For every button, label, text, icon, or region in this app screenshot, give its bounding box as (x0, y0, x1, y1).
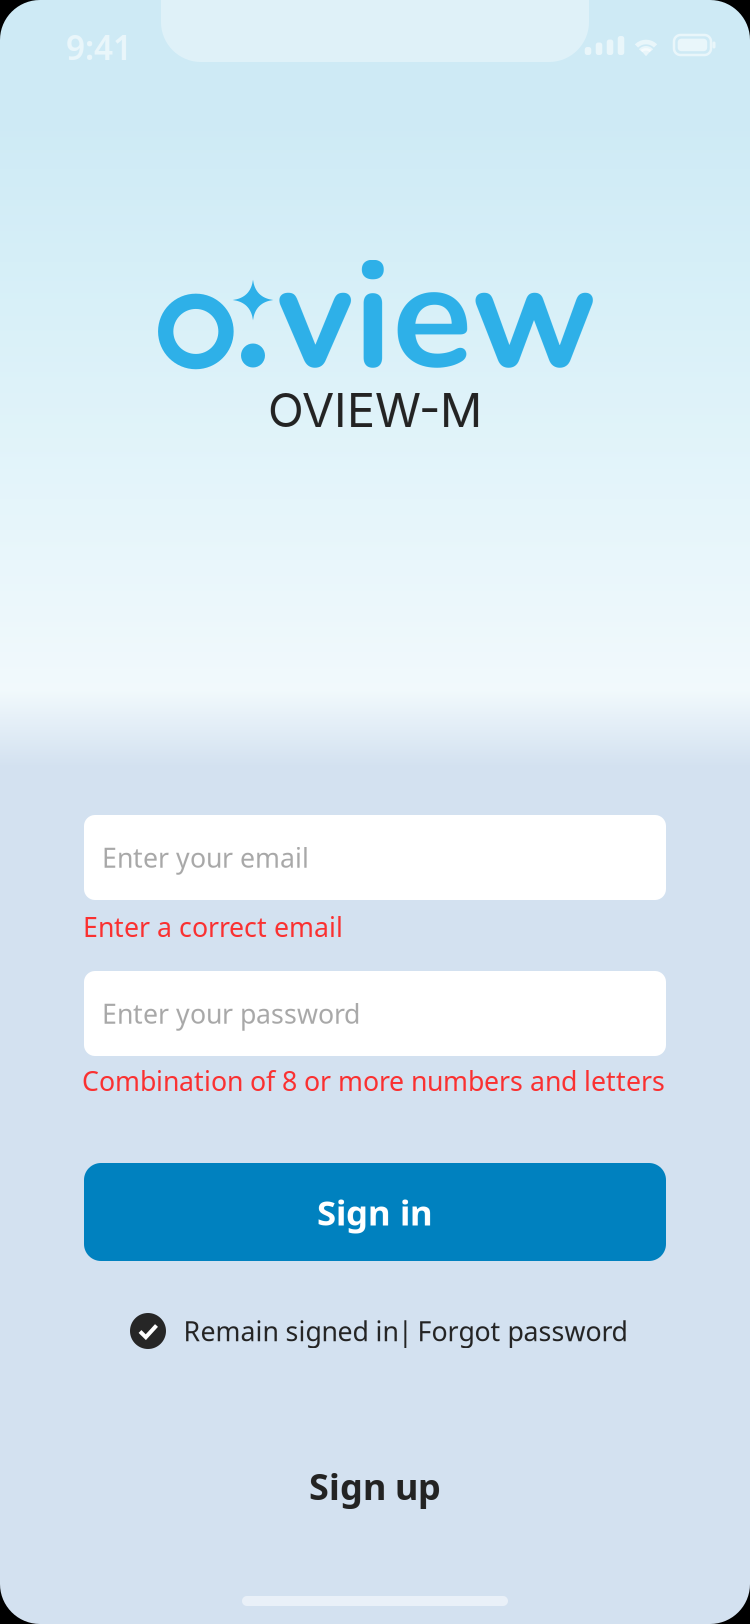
button[interactable]: Enter your password (84, 971, 666, 1056)
staticText: 9:41 (66, 25, 132, 69)
button[interactable]: Remain signed in (130, 1313, 166, 1349)
staticText: Sign in (317, 1189, 433, 1235)
button[interactable]: Enter your email (84, 815, 666, 900)
staticText: Forgot password (417, 1313, 627, 1349)
staticText: Enter a correct email (83, 909, 343, 944)
staticText: Combination of 8 or more numbers and let… (82, 1063, 665, 1098)
staticText: Enter your password (102, 996, 360, 1031)
staticText: Sign up (309, 1462, 441, 1510)
staticText: view (276, 217, 597, 419)
staticText: | (398, 1313, 413, 1349)
button[interactable]: Remain signed in (183, 1313, 398, 1349)
staticText: OVIEW-M (268, 382, 482, 438)
staticText: Remain signed in (183, 1313, 398, 1349)
button[interactable]: Sign up (255, 1460, 495, 1512)
button[interactable]: Forgot password (417, 1313, 627, 1349)
button[interactable]: Sign in (84, 1163, 666, 1261)
staticText: Enter your email (102, 840, 309, 875)
